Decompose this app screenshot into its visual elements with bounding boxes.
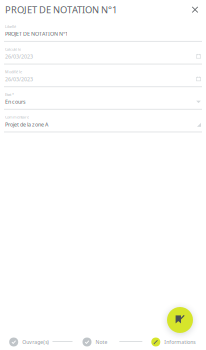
staticText: 26/03/2023	[5, 75, 33, 83]
staticText: Modifié le	[5, 69, 22, 74]
staticText: Ouvrage(s)	[22, 338, 49, 345]
staticText: PROJET DE NOTATION N°1	[5, 3, 117, 16]
button[interactable]: Edit note	[167, 307, 193, 333]
button[interactable]: Calculé le	[0, 42, 206, 64]
button[interactable]: Commentaire	[0, 110, 206, 132]
staticText: Etat *	[5, 92, 14, 97]
staticText: Note	[95, 338, 107, 345]
staticText: Projet de la zone A	[5, 121, 48, 128]
button[interactable]: Etat *	[0, 87, 206, 110]
button[interactable]: Note	[82, 337, 107, 346]
staticText: Commentaire	[5, 114, 29, 120]
button[interactable]: Close	[189, 4, 201, 16]
staticText: Informations	[164, 338, 195, 345]
button[interactable]: Informations	[151, 337, 195, 346]
staticText: Calculé le	[5, 46, 21, 52]
staticText: Libellé	[5, 24, 16, 29]
button[interactable]: Modifié le	[0, 65, 206, 87]
staticText: 26/03/2023	[5, 53, 33, 60]
staticText: En cours	[5, 98, 26, 105]
button[interactable]: Libellé	[0, 19, 206, 42]
button[interactable]: Ouvrage(s)	[9, 337, 49, 346]
staticText: PROJET DE NOTATION N°1	[5, 30, 68, 37]
